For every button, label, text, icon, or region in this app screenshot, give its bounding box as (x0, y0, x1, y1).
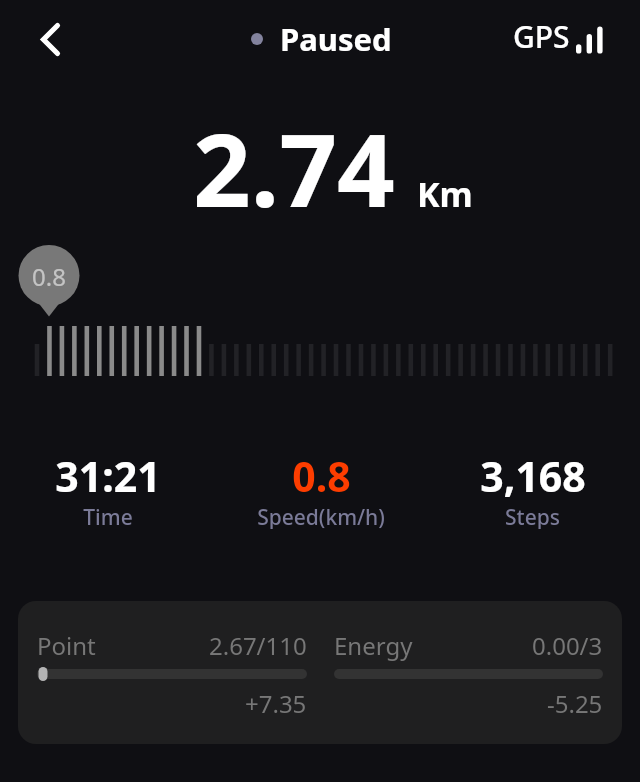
staticText: 31:21 (55, 448, 161, 504)
button[interactable]: Energy (334, 601, 603, 744)
button[interactable]: 31:21 (0, 448, 213, 530)
other: GPS signal strength (576, 19, 604, 55)
staticText: -5.25 (547, 687, 603, 720)
button[interactable]: 0.8 (213, 448, 427, 530)
staticText: Km (417, 171, 473, 217)
staticText: 2.67/110 (209, 629, 307, 662)
staticText: Time (83, 503, 133, 529)
staticText: 0.8 (32, 260, 66, 293)
staticText: Point (37, 629, 96, 662)
staticText: GPS (513, 16, 570, 57)
staticText: +7.35 (245, 687, 307, 720)
staticText: 0.00/3 (532, 629, 603, 662)
button[interactable]: Point (37, 601, 307, 744)
button[interactable]: Paused (251, 18, 392, 60)
staticText: 3,168 (480, 448, 586, 504)
button[interactable]: GPS (505, 16, 612, 57)
staticText: Paused (280, 18, 392, 60)
staticText: Energy (334, 629, 413, 662)
button[interactable]: Back (26, 15, 74, 63)
button[interactable]: 3,168 (427, 448, 640, 530)
staticText: Speed(km/h) (257, 503, 385, 529)
staticText: Steps (505, 503, 560, 529)
staticText: 0.8 (292, 448, 351, 504)
staticText: 2.74 (193, 99, 395, 237)
